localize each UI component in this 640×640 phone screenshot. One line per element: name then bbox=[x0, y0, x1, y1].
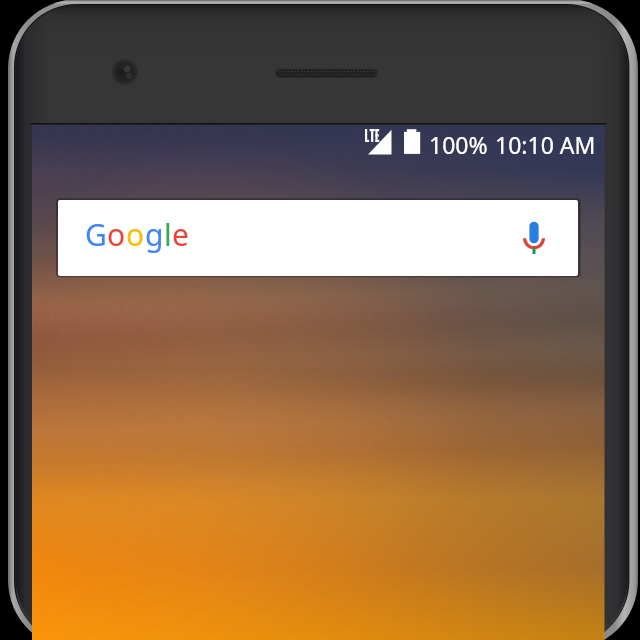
staticText: G bbox=[85, 214, 107, 255]
button[interactable]: Voice search bbox=[510, 209, 566, 265]
staticText: g bbox=[145, 214, 164, 255]
staticText: o bbox=[126, 214, 145, 255]
staticText: l bbox=[164, 214, 172, 255]
button[interactable]: G bbox=[58, 200, 578, 276]
staticText: 100% bbox=[429, 129, 488, 160]
staticText: e bbox=[172, 214, 189, 255]
staticText: 10:10 AM bbox=[495, 129, 596, 160]
staticText: o bbox=[107, 214, 126, 255]
